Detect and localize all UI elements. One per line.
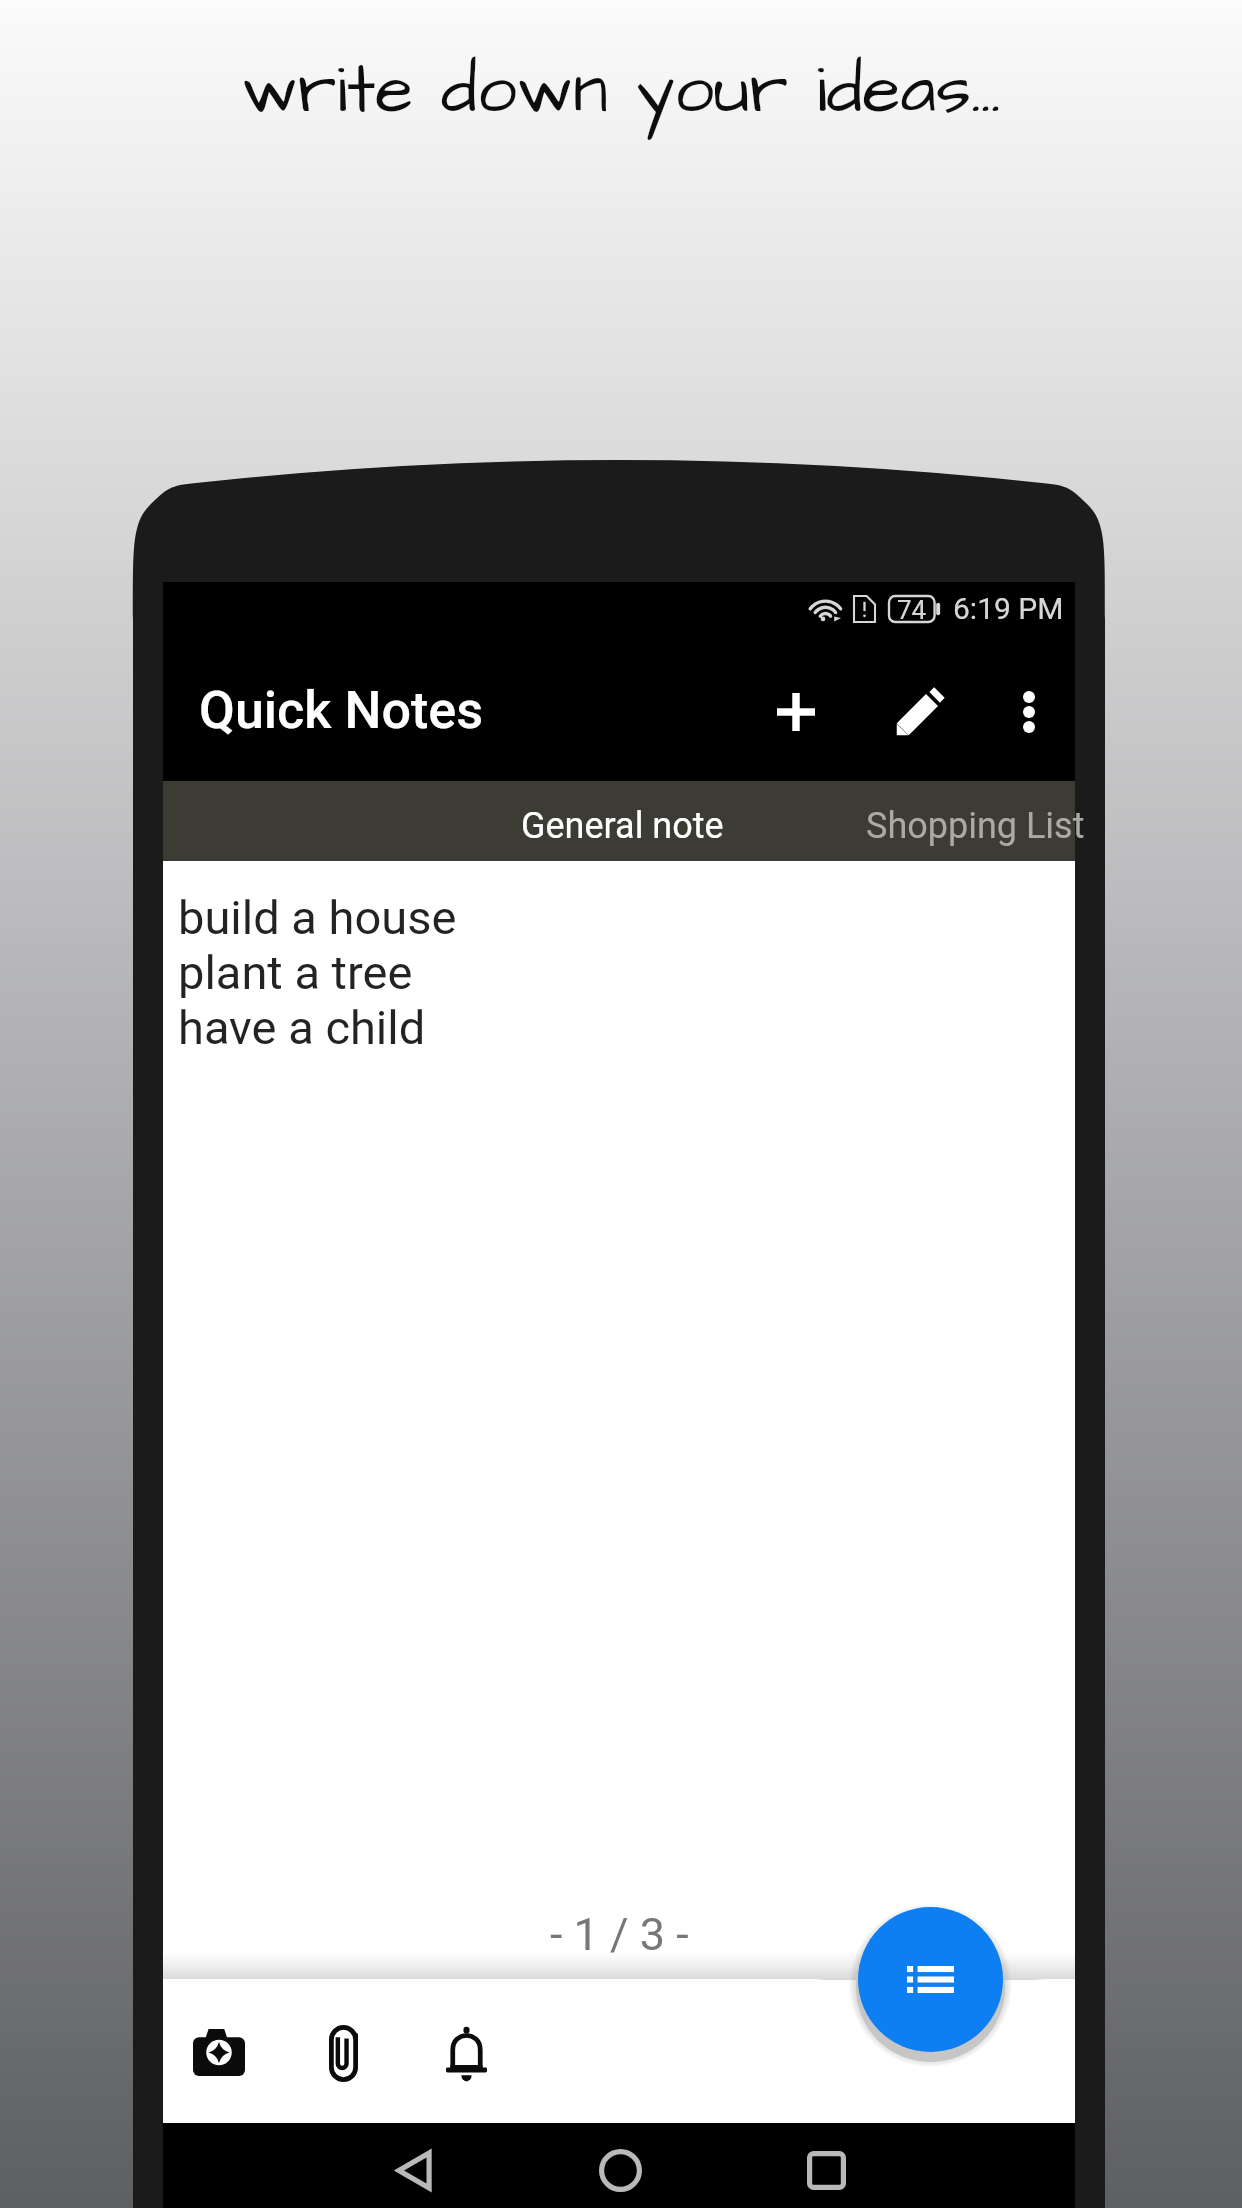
staticText: 6:19 PM: [953, 591, 1064, 626]
button[interactable]: Home: [578, 2128, 662, 2208]
staticText: - 1 / 3 -: [550, 1908, 689, 1961]
button[interactable]: Camera: [157, 1990, 281, 2114]
button[interactable]: Attach file: [281, 1990, 405, 2114]
button[interactable]: Add note: [732, 648, 859, 775]
button[interactable]: General note: [432, 781, 812, 861]
staticText: build a house: [178, 890, 457, 945]
staticText: have a child: [178, 1000, 426, 1055]
button[interactable]: Back: [372, 2128, 456, 2208]
staticText: Shopping List: [866, 805, 1085, 847]
button[interactable]: Recent apps: [784, 2128, 868, 2208]
button[interactable]: Shopping List: [866, 781, 1166, 861]
staticText: Quick Notes: [199, 680, 484, 741]
staticText: plant a tree: [178, 945, 413, 1000]
staticText: General note: [521, 805, 724, 847]
staticText: write down your ideas...: [241, 42, 1001, 139]
button[interactable]: Checklist view: [858, 1907, 1003, 2052]
button[interactable]: Edit note: [856, 648, 983, 775]
button[interactable]: Reminder: [404, 1990, 528, 2114]
staticText: 74: [897, 595, 927, 621]
button[interactable]: More options: [965, 648, 1092, 775]
